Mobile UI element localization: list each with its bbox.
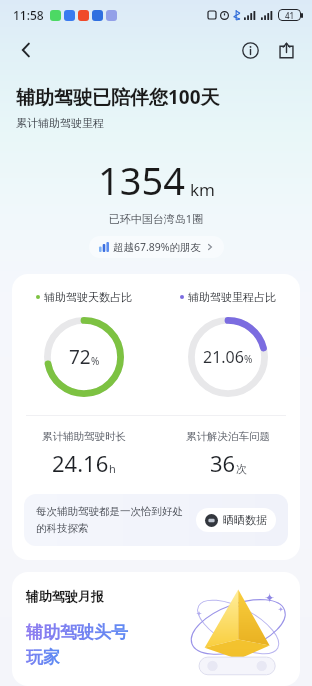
staticText: 累计辅助驾驶时长 [42,430,126,443]
button[interactable]: 超越67.89%的朋友 [89,236,224,258]
staticText: 已环中国台湾岛1圈 [0,211,312,226]
staticText: 辅助驾驶里程占比 [188,290,276,304]
button[interactable]: 晒晒数据 [196,508,276,532]
staticText: h [109,461,116,476]
staticText: 累计辅助驾驶里程 [16,116,104,130]
button[interactable]: Share [268,32,304,68]
button[interactable]: Back [6,30,46,70]
staticText: 21.06 [203,346,244,368]
staticText: 晒晒数据 [223,513,267,527]
staticText: 72 [69,344,91,370]
staticText: 玩家 [26,647,60,668]
staticText: 累计解决泊车问题 [186,430,270,443]
staticText: 辅助驾驶头号 [26,622,128,643]
button[interactable]: 辅助驾驶月报 [12,572,300,686]
staticText: 1354 [98,154,185,206]
staticText: 每次辅助驾驶都是一次恰到好处的科技探索 [36,505,188,535]
staticText: 辅助驾驶天数占比 [44,290,132,304]
staticText: km [190,178,215,201]
staticText: 24.16 [52,448,109,478]
staticText: 41 [285,10,295,21]
staticText: 辅助驾驶月报 [26,588,104,604]
staticText: 次 [236,462,247,476]
staticText: % [244,352,253,366]
staticText: 辅助驾驶已陪伴您100天 [16,84,220,110]
staticText: 11:58 [13,7,44,23]
button[interactable]: Info [232,32,268,68]
staticText: 超越67.89%的朋友 [113,240,202,254]
staticText: 36 [210,448,236,478]
staticText: % [91,354,100,368]
